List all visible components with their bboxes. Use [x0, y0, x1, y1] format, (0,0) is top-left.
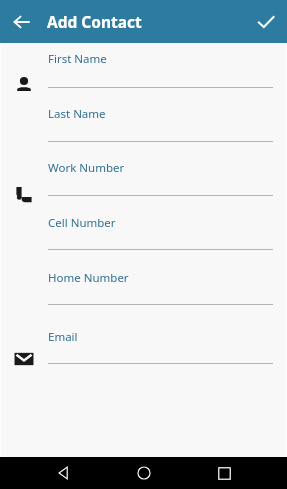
button[interactable]: Recent apps [207, 457, 241, 489]
button[interactable]: Home Number [48, 270, 273, 306]
button[interactable]: Back [46, 457, 80, 489]
button[interactable]: First Name [48, 51, 273, 87]
staticText: Email [48, 329, 78, 345]
other: Email [13, 348, 35, 370]
button[interactable]: Back [6, 6, 38, 38]
staticText: Work Number [48, 160, 125, 176]
button[interactable]: Save contact [250, 6, 282, 38]
staticText: First Name [48, 51, 107, 67]
button[interactable]: Home [127, 457, 161, 489]
button[interactable]: Cell Number [48, 215, 273, 251]
staticText: Add Contact [47, 11, 142, 32]
other: Phone [14, 185, 34, 205]
button[interactable]: Email [48, 329, 273, 365]
staticText: Last Name [48, 106, 106, 122]
other: Name [14, 75, 34, 95]
staticText: Home Number [48, 270, 129, 286]
button[interactable]: Last Name [48, 106, 273, 142]
staticText: Cell Number [48, 215, 116, 231]
button[interactable]: Work Number [48, 160, 273, 196]
